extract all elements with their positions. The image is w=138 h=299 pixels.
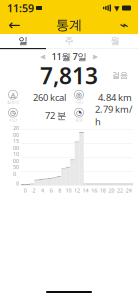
staticText: 6	[50, 187, 53, 194]
staticText: 72 분	[45, 109, 66, 122]
staticText: 1000	[13, 150, 19, 164]
staticText: 10	[65, 187, 71, 194]
staticText: 11:59	[7, 1, 34, 15]
button[interactable]: Share	[114, 16, 134, 34]
staticText: 0	[24, 187, 27, 194]
button[interactable]: Previous day	[36, 50, 48, 62]
staticText: 24	[126, 187, 132, 194]
button[interactable]: 월	[92, 34, 138, 48]
staticText: 2000	[13, 124, 19, 138]
staticText: 500	[13, 163, 19, 177]
staticText: ◎	[76, 91, 82, 98]
staticText: 260 kcal	[33, 91, 66, 104]
staticText: ⌁	[119, 17, 128, 33]
staticText: 4	[41, 187, 44, 194]
staticText: ◀	[40, 53, 45, 60]
staticText: 월	[110, 35, 119, 47]
staticText: 18	[100, 187, 106, 194]
staticText: 7,813	[40, 60, 98, 90]
button[interactable]: Next day	[89, 50, 101, 62]
staticText: 주	[64, 35, 73, 47]
staticText: ←	[8, 17, 20, 33]
staticText: 11월 7일	[51, 50, 86, 63]
staticText: 속도	[75, 118, 83, 123]
staticText: ◬	[10, 91, 15, 98]
staticText: ▶	[93, 53, 98, 60]
staticText: ◔	[76, 109, 82, 116]
staticText: 20	[108, 187, 114, 194]
staticText: 거리	[75, 100, 83, 105]
staticText: ◷	[10, 109, 16, 116]
staticText: 12	[74, 187, 80, 194]
staticText: 2.79 km/h	[95, 103, 132, 128]
staticText: 14	[83, 187, 89, 194]
staticText: 걸음	[112, 70, 128, 80]
staticText: 통계	[56, 17, 82, 33]
staticText: ▾	[114, 2, 119, 14]
staticText: 시간	[9, 118, 17, 123]
staticText: 22	[117, 187, 123, 194]
staticText: 2	[32, 187, 35, 194]
staticText: 4.84 km	[98, 91, 132, 104]
staticText: 16	[91, 187, 97, 194]
staticText: 8	[58, 187, 61, 194]
staticText: 일	[18, 35, 27, 47]
button[interactable]: Back	[4, 16, 24, 34]
staticText: 0	[16, 180, 19, 187]
staticText: 1500	[13, 137, 19, 151]
staticText: 칼로리	[7, 100, 19, 105]
button[interactable]: 주	[46, 34, 92, 48]
button[interactable]: 일	[0, 34, 46, 48]
